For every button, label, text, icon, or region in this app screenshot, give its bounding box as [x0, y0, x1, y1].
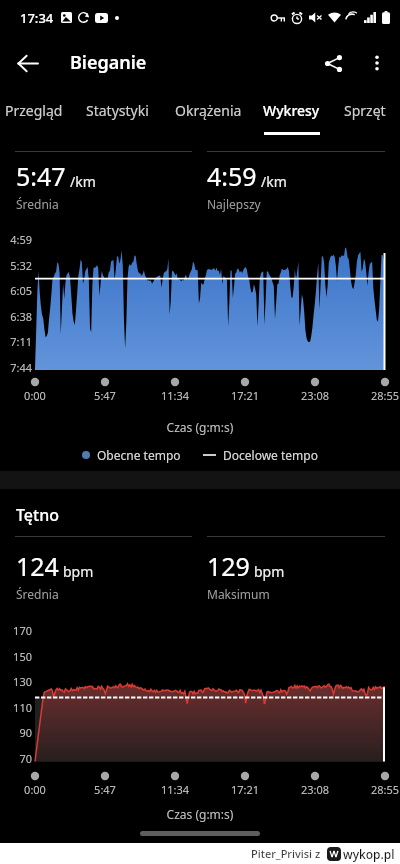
staticText: /km [70, 172, 96, 191]
staticText: 17:34 [20, 9, 54, 27]
staticText: 5:47 [83, 388, 127, 403]
staticText: 5:47 [16, 159, 66, 193]
button[interactable]: Share [310, 40, 356, 86]
staticText: 11:34 [153, 782, 197, 797]
staticText: 150 [6, 649, 32, 664]
staticText: Obecne tempo [97, 447, 181, 463]
staticText: Czas (g:m:s) [0, 806, 400, 822]
staticText: 7:11 [6, 334, 32, 349]
staticText: bpm [63, 562, 94, 581]
staticText: Statystyki [86, 101, 149, 120]
staticText: Piter_Privisi z [251, 846, 321, 861]
staticText: Okrążenia [175, 101, 242, 120]
staticText: Najlepszy [207, 196, 261, 212]
staticText: Bieganie [70, 50, 147, 75]
staticText: 7:44 [6, 360, 32, 375]
staticText: 4:59 [207, 159, 257, 193]
staticText: 11:34 [153, 388, 197, 403]
staticText: 5:32 [6, 258, 32, 273]
staticText: 110 [6, 700, 32, 715]
staticText: Średnia [16, 586, 59, 602]
staticText: 28:55 [363, 782, 400, 797]
staticText: Przegląd [5, 101, 63, 120]
button[interactable]: Okrążenia [161, 90, 255, 135]
button[interactable]: Sprzęt [330, 90, 400, 135]
button[interactable]: Wykresy [250, 90, 332, 135]
staticText: 6:38 [6, 309, 32, 324]
staticText: 23:08 [293, 782, 337, 797]
staticText: 130 [6, 674, 32, 689]
staticText: bpm [254, 562, 285, 581]
button[interactable]: More options [356, 42, 398, 84]
staticText: 0:00 [13, 782, 57, 797]
staticText: 124 [16, 549, 59, 583]
staticText: Tętno [16, 504, 59, 526]
staticText: 70 [6, 751, 32, 766]
staticText: Średnia [16, 196, 59, 212]
staticText: 129 [207, 549, 250, 583]
staticText: Sprzęt [344, 101, 386, 120]
staticText: 4:59 [6, 232, 32, 247]
staticText: Czas (g:m:s) [0, 419, 400, 435]
staticText: 17:21 [223, 388, 267, 403]
staticText: Wykresy [263, 101, 320, 120]
button[interactable]: Back [0, 36, 54, 90]
staticText: /km [261, 172, 287, 191]
staticText: 17:21 [223, 782, 267, 797]
staticText: Maksimum [207, 586, 270, 602]
staticText: 5:47 [83, 782, 127, 797]
staticText: 90 [6, 725, 32, 740]
staticText: 0:00 [13, 388, 57, 403]
staticText: 28:55 [363, 388, 400, 403]
button[interactable]: Przegląd [0, 90, 75, 135]
staticText: wykop.pl [343, 846, 395, 862]
staticText: 170 [6, 623, 32, 638]
staticText: 23:08 [293, 388, 337, 403]
staticText: Docelowe tempo [223, 447, 318, 463]
staticText: 6:05 [6, 283, 32, 298]
button[interactable]: Statystyki [72, 90, 162, 135]
